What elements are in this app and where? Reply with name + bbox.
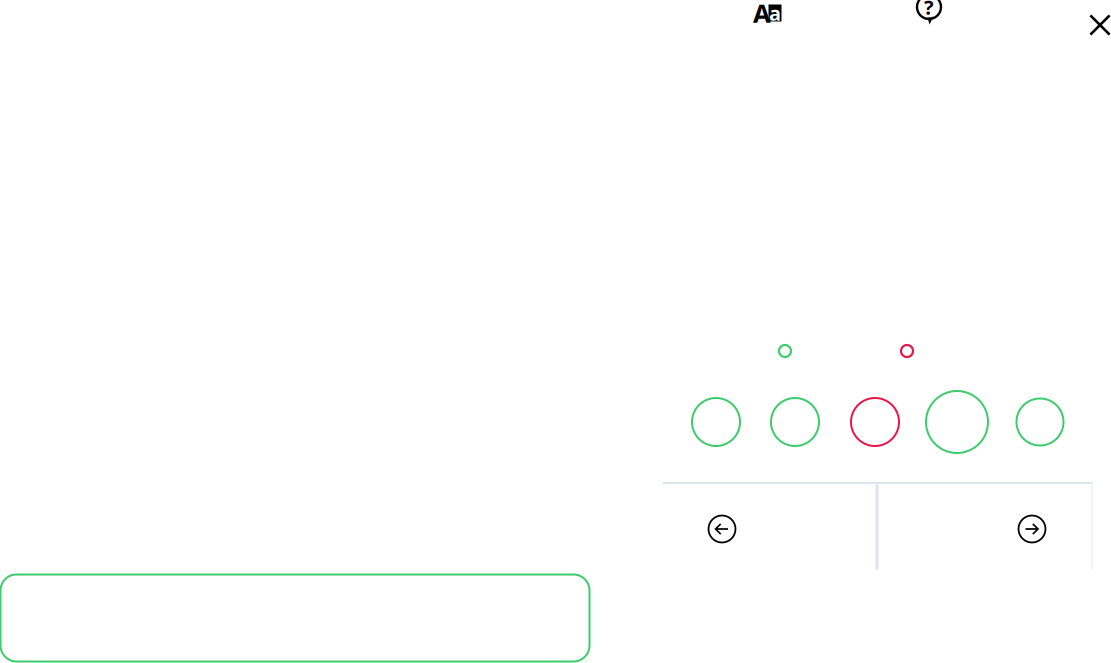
button[interactable]: Next	[1018, 515, 1046, 543]
button[interactable]: Help	[917, 0, 943, 27]
button[interactable]: Close	[1089, 14, 1111, 36]
staticText: A	[753, 0, 771, 30]
button[interactable]: Text size	[755, 2, 785, 24]
staticText: ?	[924, 0, 934, 20]
button[interactable]: Previous	[708, 515, 736, 543]
staticText: a	[769, 0, 781, 26]
